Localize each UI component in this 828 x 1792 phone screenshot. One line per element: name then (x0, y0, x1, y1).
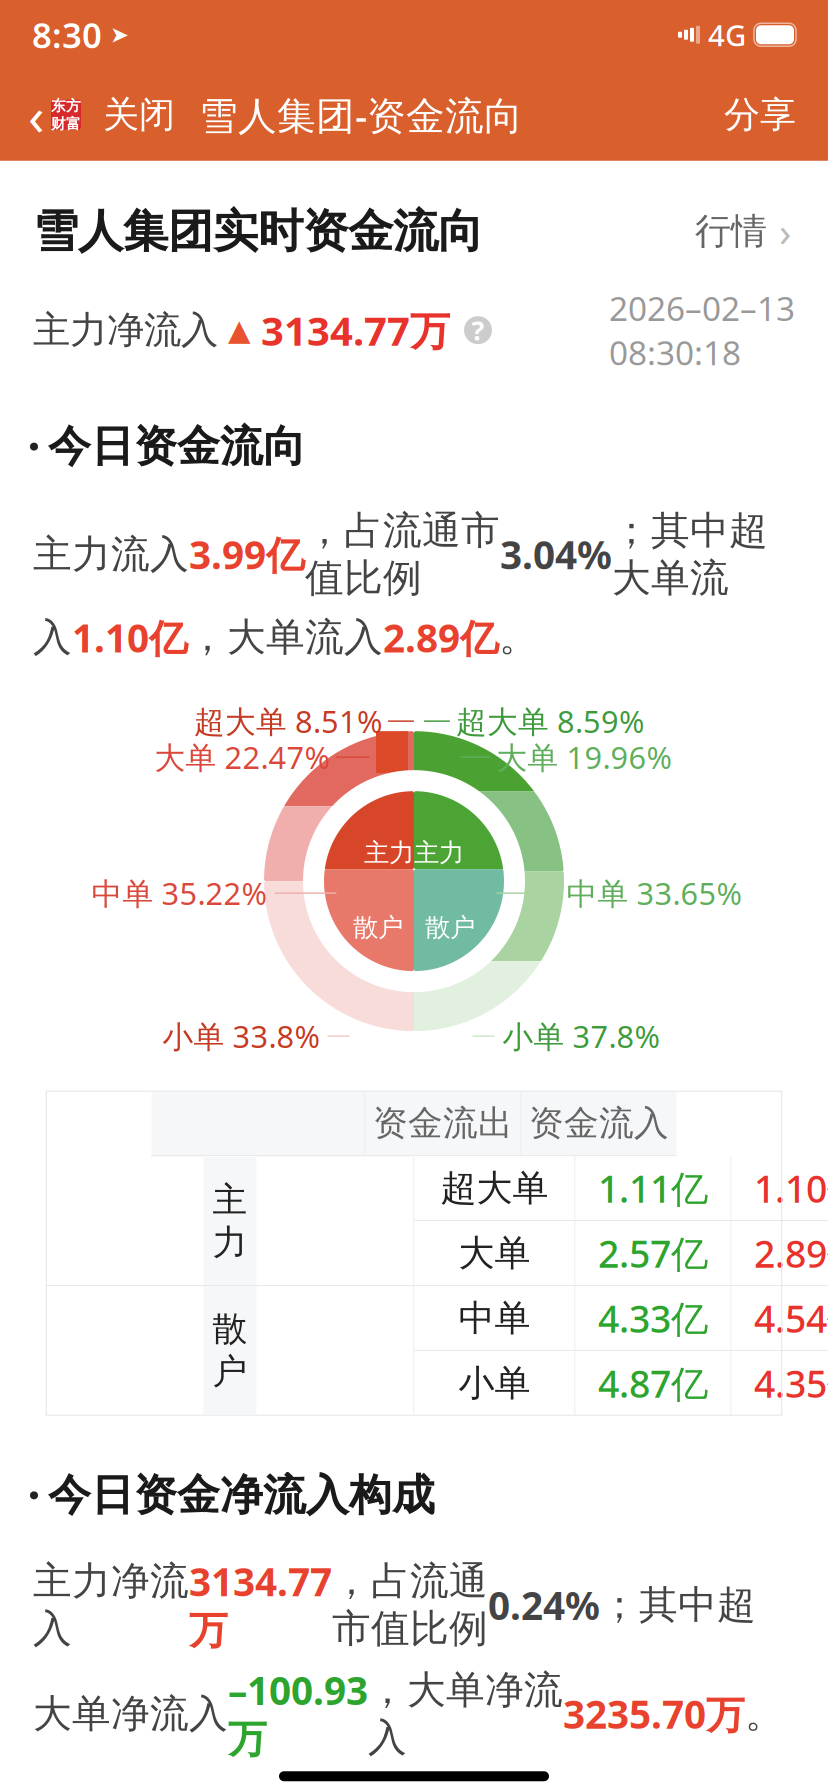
staticText: 大单 19.96% (496, 737, 671, 777)
staticText: 。 (499, 614, 538, 661)
staticText: ➤ (102, 22, 129, 48)
staticText: ，占流通市值比例 (305, 507, 500, 602)
staticText: 方 (66, 97, 81, 115)
staticText: 主力 (364, 837, 414, 868)
button[interactable]: 行情 (691, 199, 795, 264)
staticText: 资金流入 (529, 1102, 669, 1144)
staticText: 散户 (212, 1308, 247, 1393)
staticText: 4.54亿 (754, 1293, 828, 1343)
staticText: 分享 (724, 93, 796, 137)
staticText: 今日资金流向 (48, 420, 306, 473)
staticText: ，占流通市值比例 (332, 1557, 488, 1652)
button[interactable]: 返回 (22, 87, 87, 143)
staticText: 2.57亿 (598, 1228, 708, 1278)
staticText: 散户 (425, 912, 475, 943)
staticText: 3235.70万 (563, 1688, 745, 1739)
staticText: 主力净流入 (33, 307, 218, 353)
staticText: 小单 37.8% (502, 1016, 659, 1056)
staticText: 4G (700, 15, 746, 54)
staticText: ? (471, 312, 484, 348)
staticText: 雪人集团-资金流向 (199, 89, 523, 140)
staticText: 超大单 (440, 1166, 548, 1210)
staticText: 8:30 (32, 12, 102, 58)
staticText: 财 (51, 115, 66, 133)
staticText: 0.24% (488, 1579, 600, 1631)
staticText: ，大单净流入 (368, 1666, 563, 1761)
staticText: ；其中超大单流 (612, 507, 768, 602)
staticText: ‹ (28, 79, 45, 150)
staticText: 1.10亿 (754, 1163, 828, 1213)
staticText: › (779, 205, 791, 258)
staticText: 4.35亿 (754, 1358, 828, 1408)
staticText: 2.89亿 (383, 612, 499, 663)
staticText: 散户 (353, 912, 403, 943)
staticText: 主力流入 (33, 531, 189, 578)
button[interactable]: 关闭 (87, 87, 191, 143)
staticText: 入 (33, 614, 72, 661)
staticText: 小单 33.8% (162, 1016, 319, 1056)
staticText: 大单 22.47% (154, 737, 329, 777)
staticText: 资金流出 (373, 1102, 513, 1144)
staticText: –100.93万 (228, 1664, 368, 1763)
staticText: 2.89亿 (754, 1228, 828, 1278)
staticText: 3134.77万 (189, 1556, 332, 1654)
staticText: 4.87亿 (598, 1358, 708, 1408)
staticText: 大单 (458, 1231, 530, 1275)
staticText: 行情 (695, 209, 767, 253)
staticText: ；其中超 (600, 1581, 756, 1629)
staticText: 大单净流入 (33, 1690, 228, 1738)
staticText: 雪人集团实时资金流向 (33, 203, 483, 259)
staticText: ▲ (218, 313, 251, 347)
staticText: 小单 (458, 1361, 530, 1405)
button[interactable]: 说明 (450, 316, 492, 344)
staticText: 2026–02–13 08:30:18 (609, 286, 795, 374)
staticText: 关闭 (103, 93, 175, 137)
staticText: 1.11亿 (598, 1163, 708, 1213)
staticText: 超大单 8.59% (456, 701, 644, 741)
button[interactable]: 分享 (714, 87, 806, 143)
staticText: 。 (745, 1690, 784, 1738)
staticText: 主力 (212, 1179, 247, 1264)
staticText: 1.10亿 (72, 612, 188, 663)
staticText: 超大单 8.51% (194, 701, 382, 741)
staticText: 富 (66, 115, 81, 133)
staticText: 中单 33.65% (566, 873, 741, 913)
staticText: 3.99亿 (189, 529, 305, 580)
staticText: ，大单流入 (188, 614, 383, 661)
staticText: 中单 (458, 1296, 530, 1340)
staticText: 3134.77万 (251, 304, 450, 357)
staticText: 今日资金净流入构成 (48, 1469, 435, 1521)
staticText: 3.04% (500, 529, 612, 580)
staticText: 中单 35.22% (91, 873, 266, 913)
staticText: 东 (51, 97, 66, 115)
staticText: 主力净流入 (33, 1557, 189, 1652)
staticText: 4.33亿 (598, 1293, 708, 1343)
staticText: 主力 (414, 837, 464, 868)
